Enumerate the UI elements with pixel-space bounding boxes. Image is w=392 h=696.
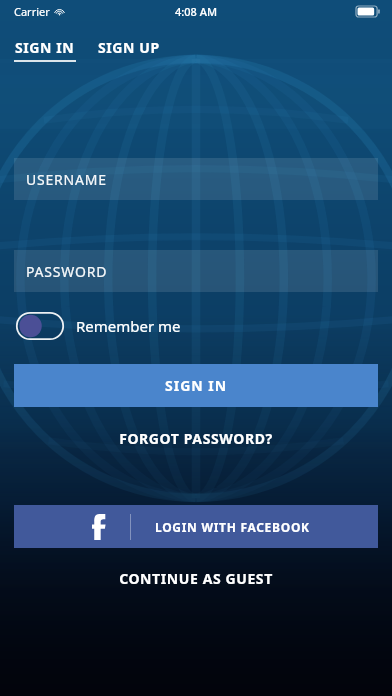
staticText: CONTINUE AS GUEST <box>119 569 273 588</box>
button[interactable]: SIGN UP <box>98 38 160 57</box>
staticText: 4:08 AM <box>175 4 218 19</box>
staticText: SIGN IN <box>15 38 75 57</box>
button[interactable]: USERNAME <box>14 158 378 200</box>
staticText: PASSWORD <box>26 262 108 281</box>
button[interactable]: PASSWORD <box>14 250 378 292</box>
staticText: FORGOT PASSWORD? <box>119 429 273 448</box>
button[interactable]: FORGOT PASSWORD? <box>0 429 392 448</box>
staticText: LOGIN WITH FACEBOOK <box>155 519 310 535</box>
button[interactable]: CONTINUE AS GUEST <box>0 569 392 588</box>
staticText: Carrier <box>14 4 50 19</box>
button[interactable]: Remember me <box>16 312 181 340</box>
staticText: USERNAME <box>26 170 107 189</box>
staticText: Remember me <box>76 316 181 336</box>
staticText: SIGN IN <box>165 376 228 395</box>
button[interactable]: LOGIN WITH FACEBOOK <box>14 505 378 548</box>
staticText: SIGN UP <box>98 38 160 57</box>
button[interactable]: SIGN IN <box>14 364 378 407</box>
button[interactable]: SIGN IN <box>14 38 76 62</box>
